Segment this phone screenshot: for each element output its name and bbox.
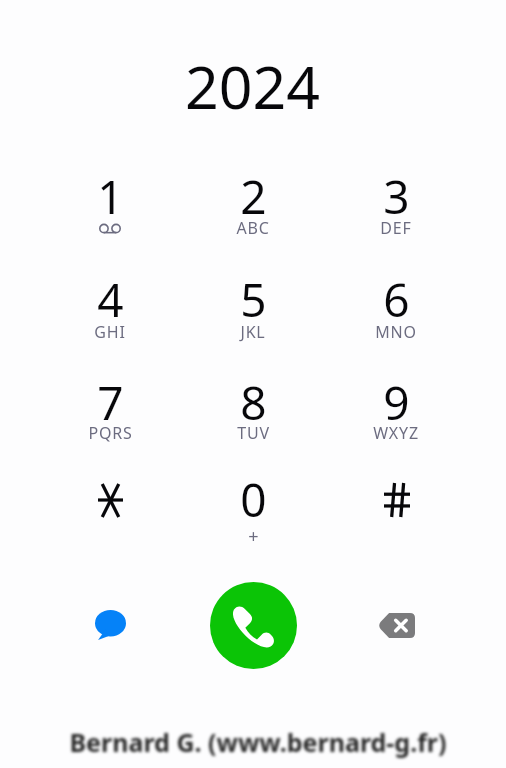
button[interactable]: Send message (72, 587, 148, 663)
staticText: 5 (240, 268, 267, 322)
button[interactable]: # (340, 453, 452, 551)
button[interactable]: 2 (197, 150, 309, 248)
staticText: Bernard G. (www.bernard-g.fr) (69, 725, 447, 759)
button[interactable]: Call (210, 582, 297, 669)
button[interactable]: 8 (197, 356, 309, 454)
button[interactable]: 4 (54, 253, 166, 351)
staticText: 1 (97, 165, 124, 219)
button[interactable]: 7 (54, 356, 166, 454)
staticText: 2 (240, 165, 267, 219)
staticText: 9 (383, 371, 410, 425)
button[interactable]: 5 (197, 253, 309, 351)
staticText: 0 (240, 468, 267, 522)
staticText: Bernard G. (www.bernard-g.fr) (68, 724, 446, 758)
button[interactable]: 3 (340, 150, 452, 248)
staticText: 2024 (185, 46, 320, 126)
button[interactable]: 9 (340, 356, 452, 454)
button[interactable]: Backspace (358, 587, 434, 663)
staticText: PQRS (88, 422, 133, 444)
button[interactable]: 0 (197, 453, 309, 551)
staticText: + (248, 524, 259, 546)
staticText: 7 (97, 371, 124, 425)
staticText: 6 (383, 268, 410, 322)
staticText: 8 (240, 371, 267, 425)
staticText: WXYZ (373, 422, 419, 444)
staticText: DEF (380, 217, 412, 239)
staticText: TUV (237, 422, 270, 444)
staticText: GHI (94, 321, 126, 343)
staticText: 3 (383, 165, 410, 219)
staticText: 4 (97, 268, 124, 322)
staticText: JKL (240, 321, 266, 343)
staticText: ABC (236, 217, 270, 239)
button[interactable]: 1 (54, 150, 166, 248)
staticText: MNO (375, 321, 417, 343)
button[interactable]: 6 (340, 253, 452, 351)
button[interactable]: * (54, 453, 166, 551)
